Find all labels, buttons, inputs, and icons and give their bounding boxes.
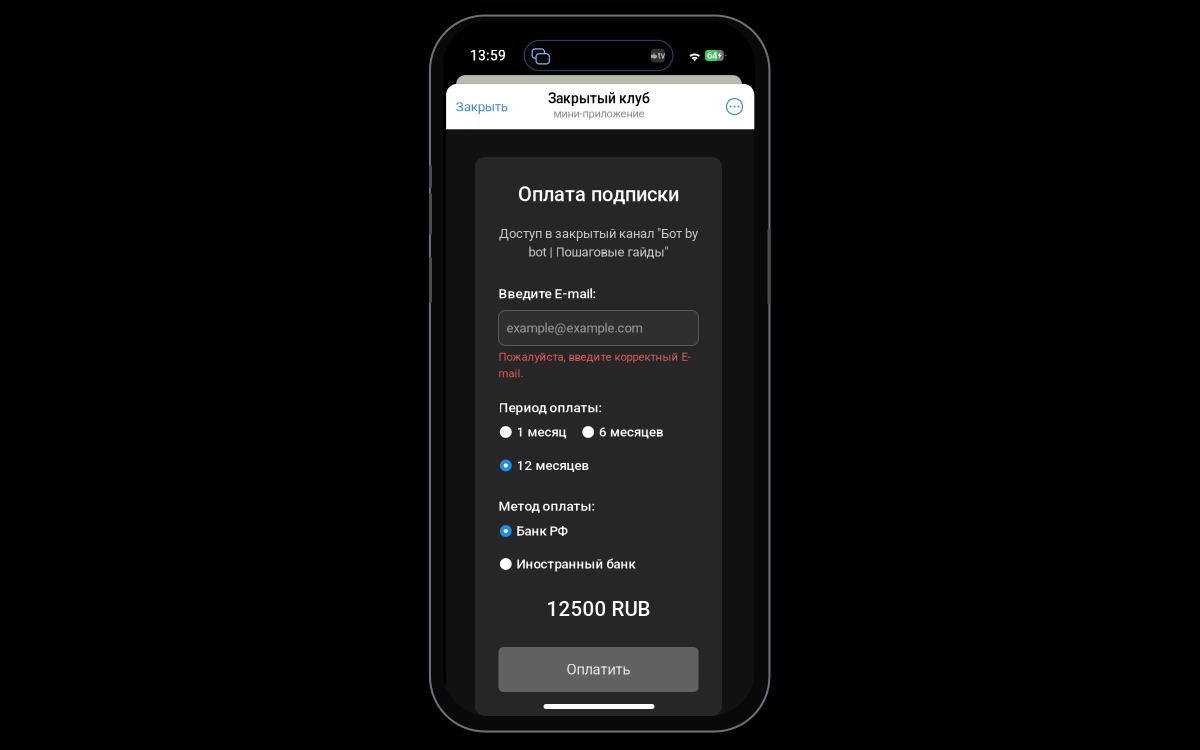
staticText: mail. xyxy=(498,367,523,380)
staticText: 12500 RUB xyxy=(546,597,650,621)
button[interactable]: Оплатить xyxy=(498,647,698,692)
button[interactable]: Банк РФ xyxy=(498,523,568,539)
staticText: мини-приложение xyxy=(553,107,644,120)
staticText: Закрыть xyxy=(456,99,508,114)
button[interactable]: 1 месяц xyxy=(498,424,566,440)
button[interactable]: Иностранный банк xyxy=(498,556,635,572)
staticText: Иностранный банк xyxy=(516,556,635,572)
staticText: Пожалуйста, введите корректный E- xyxy=(498,350,690,364)
staticText: Период оплаты: xyxy=(498,399,602,415)
staticText: 1 месяц xyxy=(516,424,566,440)
button[interactable]: 12 месяцев xyxy=(498,458,588,473)
staticText: 12 месяцев xyxy=(516,458,588,473)
staticText: tv xyxy=(658,50,665,61)
button[interactable]: Закрыть xyxy=(456,92,514,122)
staticText: 13:59 xyxy=(470,48,506,64)
staticText: Метод оплаты: xyxy=(498,498,595,514)
staticText: Доступ в закрытый канал "Бот by xyxy=(499,226,698,241)
button[interactable]: 6 месяцев xyxy=(581,424,663,440)
button[interactable]: More options xyxy=(721,94,747,120)
staticText: bot | Пошаговые гайды" xyxy=(528,244,668,260)
staticText: Закрытый клуб xyxy=(548,90,650,107)
staticText: 6 месяцев xyxy=(599,424,663,440)
staticText: Введите E-mail: xyxy=(498,285,596,301)
staticText: example@example.com xyxy=(506,320,642,336)
staticText: 64 xyxy=(707,50,717,61)
staticText: Банк РФ xyxy=(516,523,568,539)
staticText: Оплата подписки xyxy=(518,183,679,206)
staticText: Оплатить xyxy=(566,661,630,678)
